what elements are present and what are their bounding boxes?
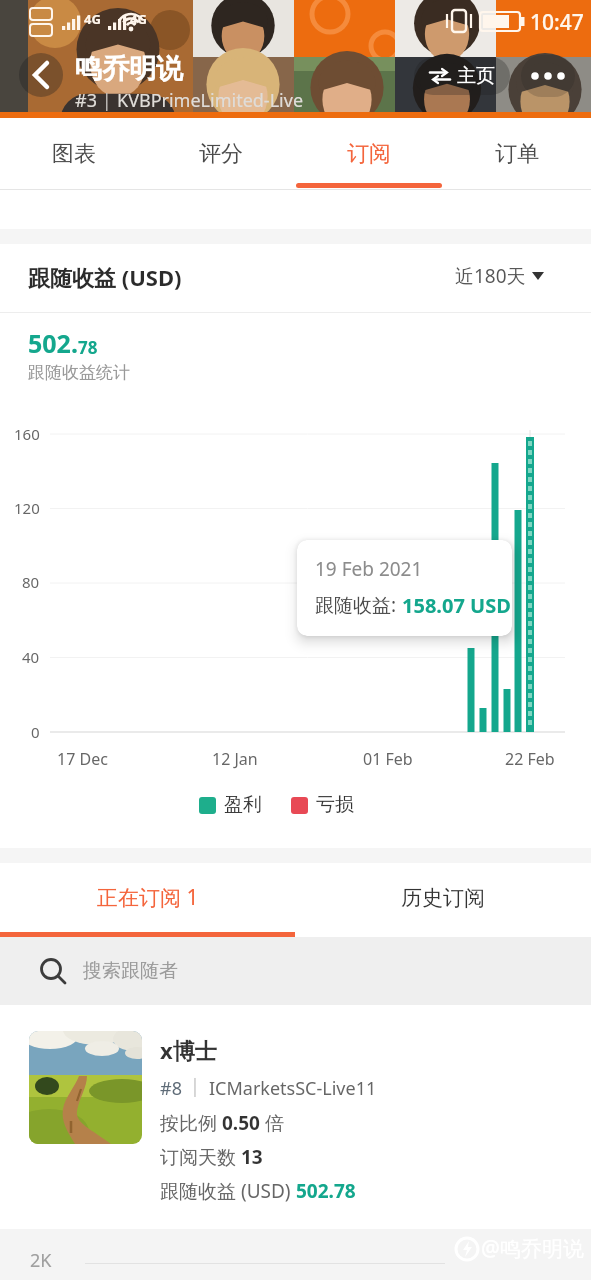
button[interactable]: 订阅 xyxy=(295,118,443,190)
staticText: 跟随收益 (USD) xyxy=(28,262,182,292)
staticText: 502.78 xyxy=(296,1178,356,1204)
staticText: ICMarketsSC-Live11 xyxy=(209,1076,377,1101)
staticText: 0.50 xyxy=(222,1110,260,1136)
button[interactable]: 正在订阅 1 xyxy=(0,863,295,932)
staticText: 近180天 xyxy=(455,263,526,289)
staticText: 跟随收益: xyxy=(315,592,402,618)
staticText: 鸣乔明说 xyxy=(75,52,183,86)
staticText: 40 xyxy=(22,647,40,667)
staticText: 13 xyxy=(241,1144,263,1170)
staticText: 正在订阅 1 xyxy=(97,883,199,912)
staticText: 亏损 xyxy=(316,793,354,817)
staticText: 78 xyxy=(78,336,98,359)
staticText: #8 xyxy=(160,1076,182,1101)
staticText: 主页 xyxy=(457,64,495,88)
staticText: 120 xyxy=(14,498,40,518)
button[interactable]: 近180天 xyxy=(455,256,575,296)
staticText: 80 xyxy=(22,572,40,592)
staticText: 0 xyxy=(31,722,40,742)
button[interactable] xyxy=(521,55,575,97)
staticText: 17 Dec xyxy=(57,748,108,770)
staticText: 盈利 xyxy=(224,793,262,817)
button[interactable]: x博士 xyxy=(0,1005,591,1229)
staticText: 订阅 xyxy=(347,140,391,168)
staticText: 跟随收益统计 xyxy=(28,362,130,383)
button[interactable]: 评分 xyxy=(147,118,295,190)
staticText: 19 Feb 2021 xyxy=(315,556,423,582)
staticText: 搜索跟随者 xyxy=(83,959,178,983)
staticText: 评分 xyxy=(199,140,243,168)
staticText: 10:47 xyxy=(530,8,584,37)
button[interactable] xyxy=(19,53,63,97)
staticText: 历史订阅 xyxy=(401,885,485,911)
button[interactable]: 订单 xyxy=(443,118,591,190)
staticText: 22 Feb xyxy=(505,748,555,770)
staticText: 订阅天数 xyxy=(160,1144,241,1170)
staticText: | xyxy=(97,88,117,113)
staticText: 4G xyxy=(130,10,147,28)
staticText: 订单 xyxy=(495,140,539,168)
button[interactable]: 历史订阅 xyxy=(295,863,591,932)
button[interactable]: 主页 xyxy=(414,57,510,95)
staticText: #3 xyxy=(75,88,97,113)
staticText: 2K xyxy=(30,1248,52,1273)
staticText: 跟随收益 (USD) xyxy=(160,1178,296,1204)
staticText: 01 Feb xyxy=(363,748,413,770)
staticText: 158.07 USD xyxy=(402,592,511,619)
staticText: 按比例 xyxy=(160,1110,222,1136)
staticText: KVBPrimeLimited-Live xyxy=(117,88,304,113)
button[interactable]: 搜索跟随者 xyxy=(0,937,591,1005)
staticText: @鸣乔明说 xyxy=(481,1234,584,1263)
staticText: │ xyxy=(182,1076,209,1098)
staticText: 4G xyxy=(84,10,101,28)
staticText: 图表 xyxy=(52,140,96,168)
staticText: 倍 xyxy=(260,1110,284,1136)
staticText: x博士 xyxy=(160,1035,217,1065)
button[interactable]: 图表 xyxy=(0,118,147,190)
staticText: 160 xyxy=(14,424,40,444)
staticText: 12 Jan xyxy=(212,748,258,770)
staticText: 502. xyxy=(28,326,78,360)
